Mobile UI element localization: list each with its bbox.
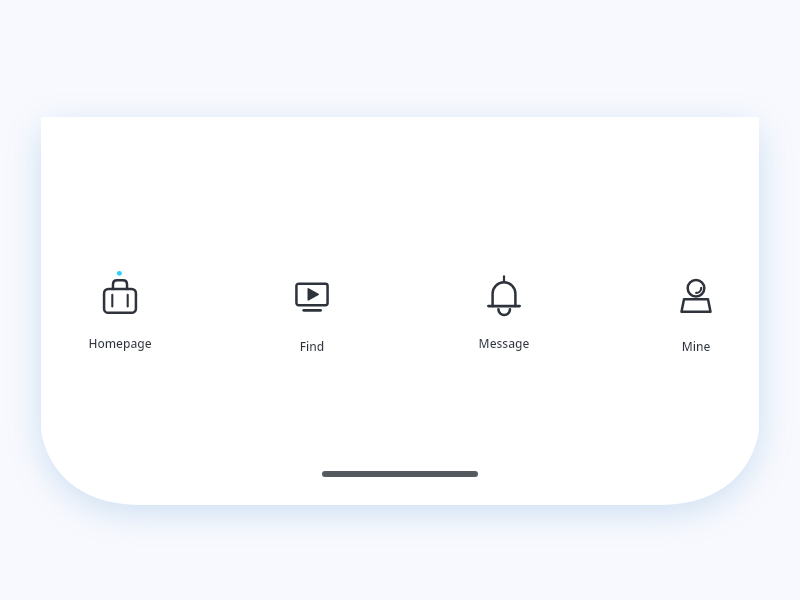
button[interactable]: Mine	[654, 262, 738, 356]
button[interactable]: Message	[462, 262, 546, 356]
staticText: Mine	[654, 338, 738, 354]
staticText: Message	[462, 335, 546, 351]
staticText: Find	[270, 338, 354, 354]
button[interactable]: Homepage	[78, 262, 162, 356]
button[interactable]: Find	[270, 262, 354, 356]
staticText: Homepage	[78, 335, 162, 351]
